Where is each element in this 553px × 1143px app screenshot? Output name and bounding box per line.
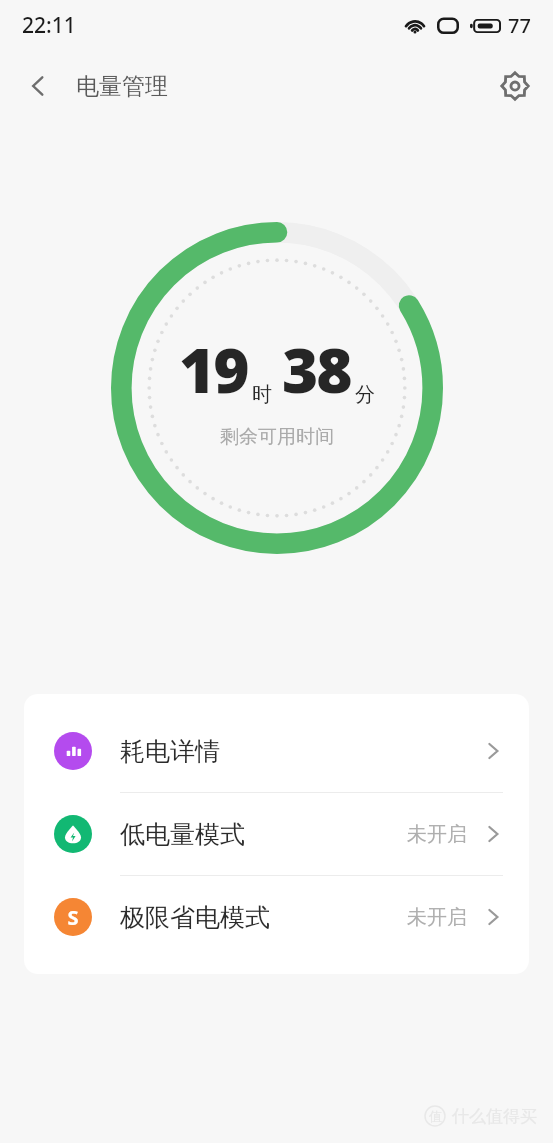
staticText: S bbox=[67, 904, 79, 931]
staticText: 耗电详情 bbox=[120, 736, 483, 767]
staticText: 38 bbox=[282, 327, 351, 411]
staticText: 22:11 bbox=[22, 11, 76, 40]
staticText: 77 bbox=[508, 12, 531, 39]
staticText: 什么值得买 bbox=[452, 1106, 537, 1127]
staticText: 未开启 bbox=[407, 905, 467, 930]
staticText: 19 bbox=[179, 327, 248, 411]
staticText: 时 bbox=[252, 382, 272, 407]
staticText: 分 bbox=[355, 382, 375, 407]
button[interactable]: Settings bbox=[491, 62, 539, 110]
staticText: 电量管理 bbox=[76, 72, 168, 101]
staticText: 极限省电模式 bbox=[120, 902, 407, 933]
staticText: 剩余可用时间 bbox=[220, 425, 334, 449]
staticText: 未开启 bbox=[407, 822, 467, 847]
button[interactable]: S bbox=[24, 876, 529, 958]
button[interactable]: 耗电详情 bbox=[24, 710, 529, 792]
button[interactable]: Back bbox=[14, 62, 62, 110]
staticText: 值 bbox=[429, 1108, 442, 1124]
button[interactable]: 低电量模式 bbox=[24, 793, 529, 875]
staticText: 低电量模式 bbox=[120, 819, 407, 850]
